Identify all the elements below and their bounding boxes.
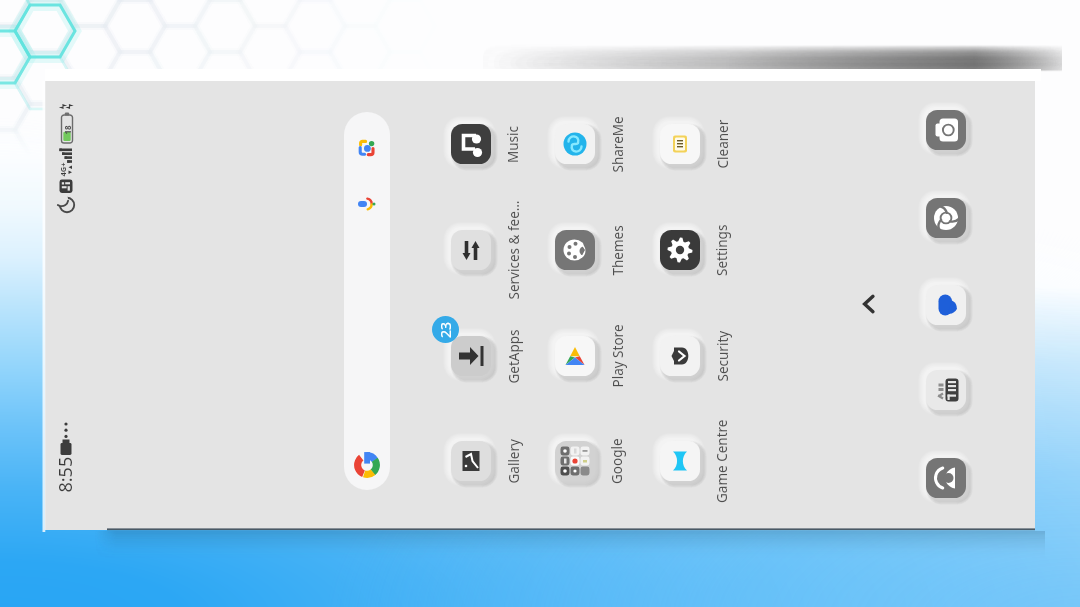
staticText: Game Centre — [713, 419, 731, 503]
staticText: Music — [504, 125, 522, 163]
staticText: Security — [713, 330, 731, 381]
button[interactable] — [443, 328, 499, 384]
button[interactable] — [547, 222, 603, 278]
staticText: Google — [608, 438, 626, 484]
staticText: Themes — [608, 224, 626, 275]
staticText: GetApps — [504, 328, 522, 383]
button[interactable]: Back — [849, 284, 889, 324]
staticText: Play Store — [608, 324, 626, 387]
staticText: Services & fee… — [504, 200, 522, 299]
button[interactable] — [652, 222, 708, 278]
button[interactable] — [443, 222, 499, 278]
button[interactable] — [652, 433, 708, 489]
staticText: Gallery — [504, 438, 522, 483]
button[interactable] — [547, 433, 603, 489]
button[interactable]: Mi Sound — [918, 450, 974, 506]
button[interactable] — [443, 116, 499, 172]
staticText: 18 — [61, 124, 72, 134]
staticText: 23 — [436, 321, 455, 338]
button[interactable] — [443, 433, 499, 489]
staticText: Cleaner — [713, 119, 731, 168]
button[interactable]: Messages — [918, 277, 974, 333]
staticText: ShareMe — [608, 115, 626, 172]
button[interactable] — [652, 328, 708, 384]
button[interactable]: Camera — [918, 102, 974, 158]
button[interactable]: YouTube — [918, 362, 974, 418]
button[interactable]: Browser — [918, 190, 974, 246]
button[interactable] — [547, 328, 603, 384]
button[interactable] — [652, 116, 708, 172]
button[interactable]: Search — [344, 112, 390, 490]
staticText: 8:55 — [52, 456, 77, 492]
button[interactable] — [547, 116, 603, 172]
staticText: 4G+ — [57, 161, 67, 176]
staticText: Settings — [713, 224, 731, 276]
